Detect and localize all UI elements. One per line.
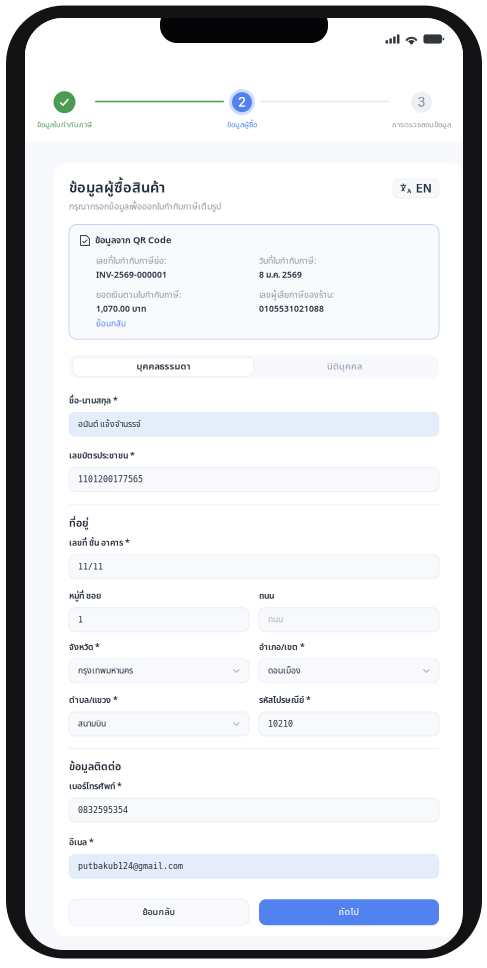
staticText: 0105531021088 [259, 303, 324, 315]
staticText: ข้อมูลจาก QR Code [95, 233, 171, 248]
staticText: ข้อมูลผู้ซื้อ [227, 119, 257, 131]
staticText: ข้อมูลใบกำกับภาษี [37, 119, 92, 131]
button[interactable]: สนามบิน [69, 712, 249, 736]
staticText: 1,070.00 บาท [96, 303, 146, 315]
staticText: ดอนเมือง [268, 664, 301, 677]
staticText: วันที่ใบกำกับภาษี: [259, 255, 316, 268]
staticText: 0832595354 [78, 805, 128, 815]
staticText: เลขผู้เสียภาษีของร้าน: [259, 289, 334, 302]
staticText: อำเภอ/เขต * [259, 641, 305, 654]
button[interactable]: กรุงเทพมหานคร [69, 659, 249, 683]
staticText: ย้อนกลับ [96, 317, 126, 330]
staticText: 1 [78, 615, 83, 624]
button[interactable]: นิติบุคคล [254, 357, 435, 376]
staticText: เลขบัตรประชาชน * [69, 449, 135, 462]
button[interactable]: EN [393, 179, 439, 198]
staticText: เลขที่ใบกำกับภาษีย่อ: [96, 255, 166, 268]
staticText: EN [416, 182, 432, 195]
staticText: สนามบิน [78, 717, 106, 730]
staticText: 1101200177565 [78, 475, 143, 484]
button[interactable]: บุคคลธรรมดา [73, 357, 254, 376]
staticText: กรุณากรอกข้อมูลเพื่อออกใบกำกับภาษีเต็มรู… [69, 200, 221, 213]
staticText: กรุงเทพมหานคร [78, 664, 133, 677]
staticText: อีเมล * [69, 836, 94, 849]
staticText: เบอร์โทรศัพท์ * [69, 780, 122, 793]
staticText: putbakub124@gmail.com [78, 861, 183, 871]
staticText: ถนน [259, 590, 274, 603]
staticText: อนันต์ แจ้งจำนรรจ์ [78, 418, 141, 431]
staticText: เลขที่ ชั้น อาคาร * [69, 536, 130, 550]
staticText: 11/11 [78, 562, 103, 571]
button[interactable]: ย้อนกลับ [69, 899, 249, 925]
button[interactable]: ดอนเมือง [259, 659, 439, 683]
staticText: 10210 [268, 719, 293, 729]
staticText: นิติบุคคล [327, 360, 362, 374]
staticText: รหัสไปรษณีย์ * [259, 694, 311, 707]
staticText: หมู่ที่ ซอย [69, 590, 101, 603]
staticText: ชื่อ-นามสกุล * [69, 394, 118, 407]
staticText: ข้อมูลผู้ซื้อสินค้า [69, 177, 165, 199]
staticText: การตรวจสอบข้อมูล [392, 119, 451, 131]
button[interactable]: ย้อนกลับ [96, 317, 126, 330]
button[interactable]: ถัดไป [259, 899, 439, 925]
staticText: 3 [417, 94, 425, 110]
staticText: ที่อยู่ [69, 515, 89, 531]
staticText: 8 ม.ค. 2569 [259, 269, 302, 282]
staticText: ข้อมูลติดต่อ [69, 759, 121, 775]
staticText: จังหวัด * [69, 641, 100, 654]
staticText: 2 [238, 94, 246, 110]
staticText: บุคคลธรรมดา [136, 360, 190, 374]
staticText: ถนน [268, 613, 283, 626]
staticText: ถัดไป [338, 905, 359, 919]
staticText: ย้อนกลับ [142, 905, 175, 919]
staticText: INV-2569-000001 [96, 269, 167, 282]
staticText: ยอดเงินตามใบกำกับภาษี: [96, 289, 181, 302]
staticText: ตำบล/แขวง * [69, 694, 118, 707]
